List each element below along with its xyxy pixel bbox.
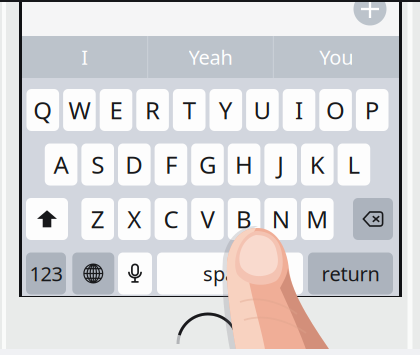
button[interactable]: A [45,143,77,185]
button[interactable]: Z [81,198,114,240]
staticText: W [68,94,90,126]
button[interactable]: I [22,36,148,78]
staticText: Y [219,94,233,126]
staticText: K [310,149,325,180]
button[interactable]: O [319,89,352,131]
staticText: Z [91,203,105,235]
staticText: X [127,203,141,235]
button[interactable]: D [118,143,151,185]
staticText: Yeah [188,44,232,70]
button[interactable]: I [283,89,315,131]
staticText: E [109,94,122,126]
staticText: V [200,203,214,235]
staticText: You [319,44,353,70]
staticText: G [199,149,216,180]
button[interactable]: N [264,198,297,240]
staticText: H [235,149,253,180]
button[interactable]: R [136,89,169,131]
button[interactable]: M [301,198,334,240]
button[interactable]: V [191,198,224,240]
button[interactable]: Add [353,0,386,25]
button[interactable]: 123 [26,252,66,294]
button[interactable]: Q [26,89,59,131]
button[interactable]: L [338,143,370,185]
button[interactable]: H [228,143,260,185]
staticText: M [306,203,328,235]
staticText: Q [33,94,52,126]
button[interactable]: X [118,198,151,240]
button[interactable]: C [155,198,187,240]
button[interactable]: Dictation [118,252,152,294]
staticText: N [272,203,290,235]
staticText: C [163,203,178,235]
staticText: O [326,94,345,126]
button[interactable]: Y [209,89,242,131]
staticText: R [145,94,160,126]
button[interactable]: Next keyboard [72,252,114,294]
button[interactable]: return [308,252,393,294]
staticText: U [253,94,271,126]
staticText: space [203,260,257,287]
staticText: return [321,260,379,287]
staticText: T [183,94,196,126]
staticText: 123 [29,260,62,287]
staticText: D [125,149,143,180]
staticText: B [236,203,252,235]
button[interactable]: K [301,143,334,185]
staticText: P [365,94,380,126]
button[interactable]: F [155,143,187,185]
staticText: A [54,149,69,180]
button[interactable]: E [100,89,132,131]
button[interactable]: W [63,89,96,131]
staticText: I [81,44,88,70]
button[interactable]: S [81,143,114,185]
staticText: F [165,149,177,180]
button[interactable]: B [228,198,260,240]
button[interactable]: Yeah [148,36,273,78]
button[interactable]: Delete [353,198,393,240]
staticText: S [91,149,104,180]
staticText: J [277,149,284,180]
staticText: L [347,149,360,180]
staticText: I [295,94,303,126]
button[interactable]: space [157,252,303,294]
button[interactable]: P [356,89,388,131]
button[interactable]: J [264,143,297,185]
button[interactable]: Shift [26,198,68,240]
button[interactable]: G [191,143,224,185]
button[interactable]: T [173,89,205,131]
button[interactable]: U [246,89,279,131]
button[interactable]: You [273,36,399,78]
